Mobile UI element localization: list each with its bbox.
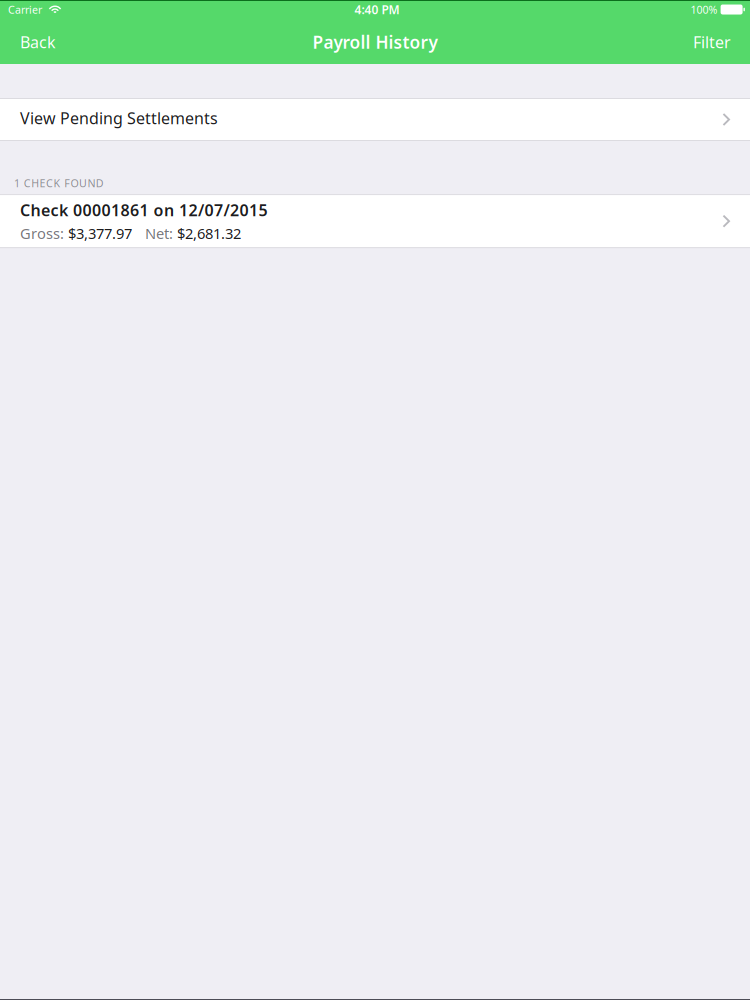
staticText: Check 00001861 on 12/07/2015: [20, 199, 267, 220]
staticText: Back: [20, 31, 56, 53]
staticText: Gross:: [20, 224, 64, 243]
staticText: Payroll History: [312, 30, 437, 53]
button[interactable]: Check 00001861 on 12/07/2015: [0, 194, 750, 248]
button[interactable]: Filter: [679, 20, 750, 64]
button[interactable]: Back: [0, 20, 70, 64]
staticText: Carrier: [8, 2, 42, 17]
staticText: $2,681.32: [177, 224, 241, 243]
button[interactable]: View Pending Settlements: [0, 98, 750, 141]
staticText: Net:: [145, 224, 173, 243]
staticText: $3,377.97: [68, 224, 132, 243]
staticText: View Pending Settlements: [20, 107, 218, 129]
staticText: 100%: [691, 2, 718, 17]
staticText: 1 CHECK FOUND: [14, 176, 104, 190]
staticText: Filter: [693, 31, 731, 53]
staticText: 4:40 PM: [354, 1, 399, 17]
